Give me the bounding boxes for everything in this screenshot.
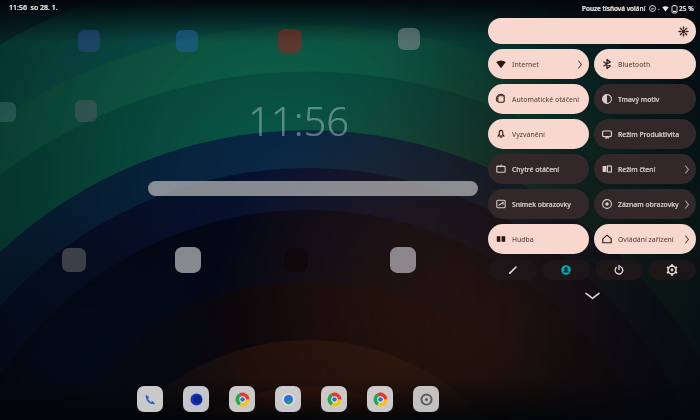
staticText: Automatické otáčení bbox=[512, 95, 583, 104]
button[interactable]: Režim Produktivita bbox=[594, 119, 696, 149]
button[interactable]: App bbox=[321, 386, 347, 412]
button[interactable]: Chytré otáčení bbox=[488, 154, 589, 184]
button[interactable]: App bbox=[0, 102, 16, 122]
staticText: 11:56 bbox=[248, 93, 350, 147]
button[interactable]: App bbox=[183, 386, 209, 412]
button[interactable]: Collapse bbox=[577, 288, 607, 302]
button[interactable]: Záznam obrazovky bbox=[594, 189, 696, 219]
button[interactable]: App bbox=[390, 247, 416, 273]
button[interactable]: Vyzvánění bbox=[488, 119, 589, 149]
button[interactable]: App bbox=[278, 29, 302, 53]
button[interactable]: Power bbox=[595, 260, 643, 280]
button[interactable]: Tmavý motiv bbox=[594, 84, 696, 114]
button[interactable]: App bbox=[75, 100, 97, 122]
staticText: Bluetooth bbox=[618, 60, 690, 69]
button[interactable]: Edit bbox=[488, 260, 537, 280]
button[interactable]: App bbox=[137, 386, 163, 412]
button[interactable]: Snímek obrazovky bbox=[488, 189, 589, 219]
staticText: Chytré otáčení bbox=[512, 165, 583, 174]
button[interactable]: App bbox=[413, 386, 439, 412]
button[interactable] bbox=[148, 181, 478, 196]
staticText: Režim čtení bbox=[618, 165, 685, 174]
staticText: Vyzvánění bbox=[512, 130, 583, 139]
button[interactable]: App bbox=[175, 247, 201, 273]
button[interactable]: Ovládání zařízení bbox=[594, 224, 696, 254]
staticText: Hudba bbox=[512, 235, 583, 244]
button[interactable]: Režim čtení bbox=[594, 154, 696, 184]
button[interactable]: App bbox=[78, 30, 100, 52]
staticText: Záznam obrazovky bbox=[618, 200, 685, 209]
button[interactable]: App bbox=[176, 30, 198, 52]
button[interactable]: App bbox=[275, 386, 301, 412]
staticText: Ovládání zařízení bbox=[618, 235, 685, 244]
button[interactable]: Brightness bbox=[488, 18, 696, 44]
staticText: 25 % bbox=[679, 4, 694, 13]
staticText: Pouze tísňová volání bbox=[582, 4, 646, 13]
staticText: Internet bbox=[512, 60, 578, 69]
button[interactable]: Automatické otáčení bbox=[488, 84, 589, 114]
staticText: Snímek obrazovky bbox=[512, 200, 583, 209]
button[interactable]: App bbox=[62, 248, 86, 272]
button[interactable]: App bbox=[398, 28, 420, 50]
staticText: 11:56 so 28. 1. bbox=[9, 3, 58, 13]
button[interactable]: Internet bbox=[488, 49, 589, 79]
staticText: Režim Produktivita bbox=[618, 130, 690, 139]
staticText: · bbox=[658, 5, 660, 13]
button[interactable]: User bbox=[542, 260, 590, 280]
button[interactable]: App bbox=[367, 386, 393, 412]
button[interactable]: Settings bbox=[648, 260, 696, 280]
button[interactable]: Hudba bbox=[488, 224, 589, 254]
button[interactable]: Bluetooth bbox=[594, 49, 696, 79]
staticText: Tmavý motiv bbox=[618, 95, 690, 104]
button[interactable]: App bbox=[229, 386, 255, 412]
